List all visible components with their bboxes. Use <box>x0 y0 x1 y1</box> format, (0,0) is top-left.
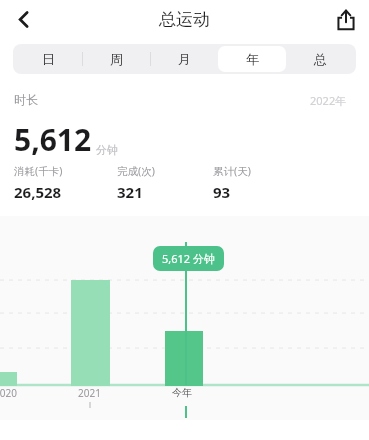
staticText: 93 <box>213 182 231 202</box>
button[interactable]: 周 <box>82 46 150 72</box>
staticText: 2020 <box>0 386 17 400</box>
staticText: 时长 <box>14 92 38 107</box>
staticText: 321 <box>117 182 143 202</box>
staticText: 周 <box>110 51 123 67</box>
staticText: 消耗(千卡) <box>14 164 63 178</box>
button[interactable]: Back <box>0 0 46 38</box>
button[interactable]: Share <box>323 0 369 38</box>
staticText: 2022年 <box>310 93 347 108</box>
staticText: 总运动 <box>159 9 210 30</box>
staticText: 分钟 <box>96 143 118 157</box>
button[interactable]: 日 <box>15 46 82 72</box>
staticText: 月 <box>178 51 191 67</box>
button[interactable]: 5,612 分钟 <box>153 246 224 271</box>
button[interactable]: 年 <box>218 46 286 72</box>
staticText: 2021 <box>78 386 101 400</box>
staticText: 完成(次) <box>117 164 155 178</box>
staticText: 5,612 <box>14 119 92 160</box>
staticText: 年 <box>246 51 259 67</box>
staticText: 累计(天) <box>213 164 251 178</box>
staticText: 26,528 <box>14 182 62 202</box>
staticText: 5,612 分钟 <box>162 251 215 266</box>
staticText: 总 <box>314 51 327 67</box>
button[interactable]: 总 <box>286 46 354 72</box>
staticText: 今年 <box>172 386 192 399</box>
button[interactable]: 月 <box>150 46 218 72</box>
staticText: 日 <box>42 51 55 67</box>
